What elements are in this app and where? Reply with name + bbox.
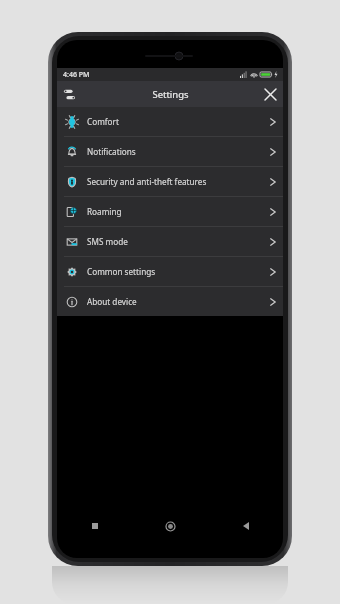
button[interactable]: About device <box>57 287 283 316</box>
staticText: Notifications <box>87 146 270 157</box>
button[interactable]: Tune <box>57 82 81 106</box>
staticText: Settings <box>152 88 189 101</box>
button[interactable]: Back <box>208 516 283 536</box>
button[interactable]: SMS mode <box>57 227 283 256</box>
staticText: 4:46 PM <box>63 70 90 80</box>
staticText: About device <box>87 296 270 307</box>
staticText: Roaming <box>87 206 270 217</box>
button[interactable]: Security and anti-theft features <box>57 167 283 196</box>
staticText: Security and anti-theft features <box>87 176 270 187</box>
staticText: Common settings <box>87 266 270 277</box>
button[interactable]: Home <box>133 516 208 536</box>
staticText: Comfort <box>87 116 270 127</box>
button[interactable]: Close <box>257 81 283 107</box>
button[interactable]: Common settings <box>57 257 283 286</box>
button[interactable]: Recent apps <box>57 516 133 536</box>
staticText: SMS mode <box>87 236 270 247</box>
button[interactable]: Roaming <box>57 197 283 226</box>
button[interactable]: Comfort <box>57 107 283 136</box>
button[interactable]: Notifications <box>57 137 283 166</box>
